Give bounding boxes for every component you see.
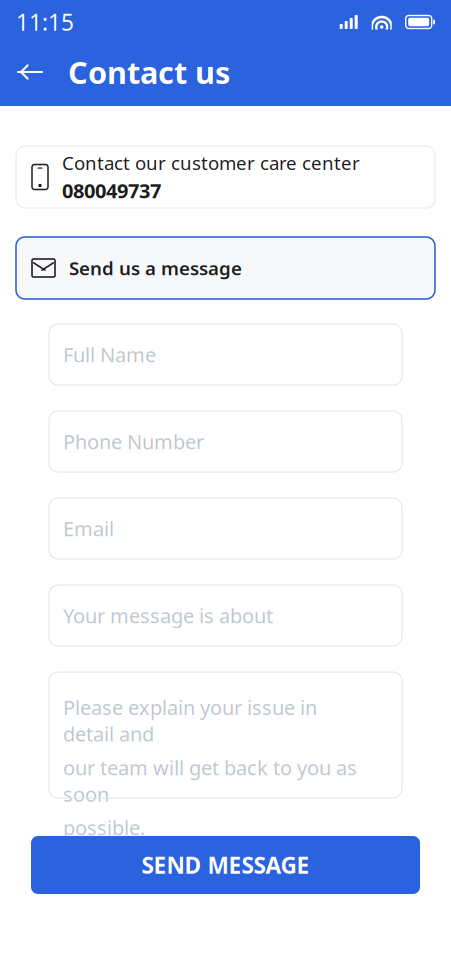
button[interactable]: Back (0, 49, 52, 95)
staticText: Full Name (63, 341, 156, 368)
button[interactable]: Send us a message (16, 237, 435, 299)
button[interactable]: SEND MESSAGE (31, 836, 420, 894)
staticText: SEND MESSAGE (141, 850, 309, 880)
staticText: possible. (63, 814, 145, 841)
button[interactable]: Email (49, 498, 402, 559)
staticText: Phone Number (63, 428, 204, 455)
staticText: Your message is about (63, 602, 273, 629)
staticText: 11:15 (16, 7, 74, 37)
staticText: Contact our customer care center (62, 150, 360, 175)
button[interactable]: Phone Number (49, 411, 402, 472)
button[interactable]: Full Name (49, 324, 402, 385)
staticText: Please explain your issue in detail and (63, 694, 317, 747)
button[interactable]: Your message is about (49, 585, 402, 646)
staticText: Send us a message (69, 256, 242, 280)
staticText: Email (63, 515, 114, 542)
button[interactable]: Contact our customer care center (16, 146, 435, 208)
staticText: 080049737 (62, 177, 161, 204)
button[interactable]: Please explain your issue in detail and (49, 672, 402, 798)
staticText: our team will get back to you as soon (63, 754, 357, 807)
staticText: Contact us (68, 52, 230, 92)
